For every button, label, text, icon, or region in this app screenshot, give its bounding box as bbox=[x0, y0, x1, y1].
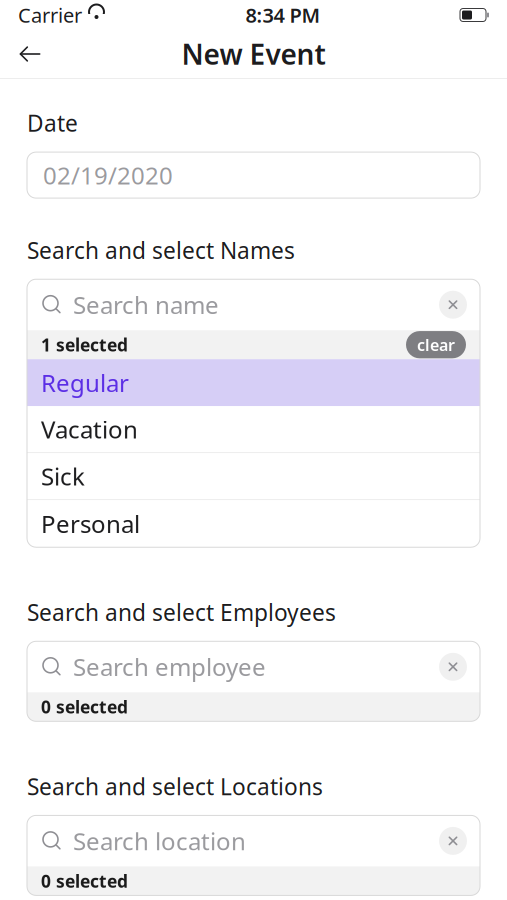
staticText: Sick bbox=[41, 460, 85, 492]
staticText: Search location bbox=[73, 825, 246, 857]
button[interactable]: Sick bbox=[27, 453, 480, 500]
staticText: Date bbox=[27, 108, 78, 138]
button[interactable]: Clear search bbox=[436, 824, 470, 858]
staticText: New Event bbox=[181, 35, 325, 73]
staticText: Carrier bbox=[18, 2, 82, 28]
staticText: 0 selected bbox=[41, 695, 128, 718]
staticText: clear bbox=[417, 334, 455, 355]
staticText: 0 selected bbox=[41, 869, 128, 892]
staticText: Search and select Locations bbox=[27, 771, 323, 801]
button[interactable]: Clear search bbox=[436, 288, 470, 322]
button[interactable]: clear bbox=[406, 331, 466, 358]
button[interactable]: 02/19/2020 bbox=[0, 152, 507, 198]
staticText: Regular bbox=[41, 367, 129, 399]
button[interactable]: Clear search bbox=[436, 650, 470, 684]
staticText: Search name bbox=[73, 289, 219, 321]
button[interactable]: Back bbox=[8, 34, 52, 74]
button[interactable]: Vacation bbox=[27, 406, 480, 453]
staticText: Search and select Employees bbox=[27, 597, 336, 627]
staticText: 8:34 PM bbox=[245, 2, 320, 28]
staticText: 1 selected bbox=[41, 333, 128, 356]
staticText: Search and select Names bbox=[27, 235, 295, 265]
button[interactable]: Regular bbox=[27, 359, 480, 406]
staticText: Personal bbox=[41, 508, 140, 540]
staticText: Vacation bbox=[41, 413, 138, 445]
staticText: Search employee bbox=[73, 651, 266, 683]
button[interactable]: Personal bbox=[27, 500, 480, 547]
staticText: 02/19/2020 bbox=[43, 159, 173, 191]
